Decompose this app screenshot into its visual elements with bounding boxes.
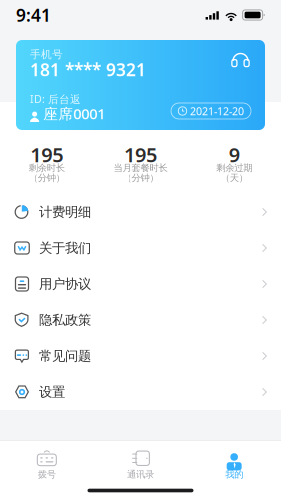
staticText: 隐私政策 — [39, 312, 91, 328]
staticText: 我的 — [225, 469, 243, 480]
staticText: 当月套餐时长 — [113, 162, 167, 174]
staticText: 座席0001 — [43, 104, 105, 123]
staticText: 2021-12-20 — [190, 104, 244, 118]
button[interactable]: 拨号 — [0, 442, 94, 480]
staticText: 9 — [229, 141, 240, 168]
staticText: 剩余过期 — [216, 162, 252, 174]
staticText: 通讯录 — [127, 469, 154, 480]
button[interactable]: 关于我们 — [0, 230, 281, 266]
staticText: 关于我们 — [39, 240, 91, 256]
staticText: 195 — [30, 141, 63, 168]
button[interactable]: 常见问题 — [0, 338, 281, 374]
button[interactable]: 客服 — [230, 51, 251, 70]
staticText: 常见问题 — [39, 348, 91, 364]
staticText: 剩余时长 — [29, 162, 65, 174]
staticText: 计费明细 — [39, 204, 91, 220]
staticText: 拨号 — [38, 469, 56, 480]
staticText: 手机号 — [30, 48, 63, 61]
staticText: ID: 后台返 — [30, 92, 81, 106]
staticText: 195 — [124, 141, 157, 168]
staticText: 181 **** 9321 — [30, 58, 146, 81]
button[interactable]: 计费明细 — [0, 194, 281, 230]
staticText: 用户协议 — [39, 276, 91, 292]
staticText: （分钟） — [122, 172, 158, 184]
staticText: （天） — [221, 172, 248, 184]
staticText: 9:41 — [16, 3, 51, 26]
button[interactable]: 我的 — [187, 442, 281, 480]
button[interactable]: 隐私政策 — [0, 302, 281, 338]
staticText: 设置 — [39, 384, 65, 400]
button[interactable]: 通讯录 — [94, 442, 187, 480]
button[interactable]: 用户协议 — [0, 266, 281, 302]
staticText: （分钟） — [29, 172, 65, 184]
button[interactable]: 设置 — [0, 374, 281, 410]
